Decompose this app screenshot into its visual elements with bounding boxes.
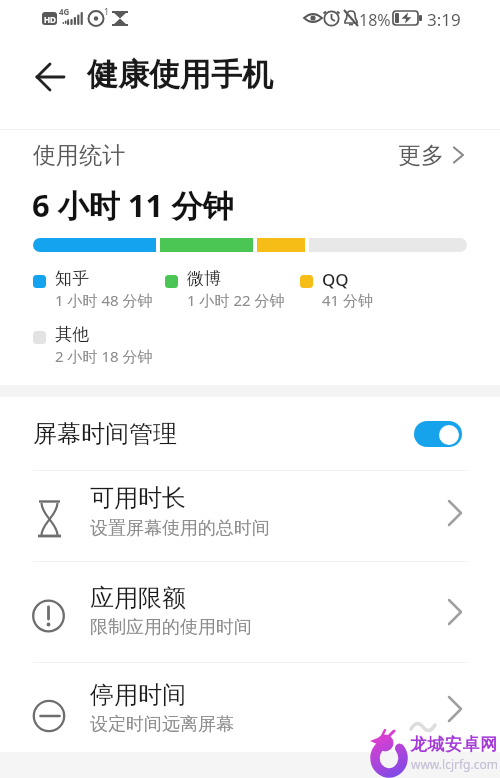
staticText: 限制应用的使用时间	[90, 616, 252, 639]
staticText: 龙城安卓网	[410, 734, 498, 755]
staticText: 应用限额	[90, 583, 186, 613]
staticText: 其他	[55, 324, 89, 345]
staticText: 停用时间	[90, 680, 186, 710]
staticText: 1 小时 22 分钟	[187, 290, 285, 310]
button[interactable]: 停用时间	[0, 662, 500, 758]
staticText: 使用统计	[33, 141, 125, 170]
staticText: 屏幕时间管理	[33, 419, 177, 449]
staticText: 18%	[359, 9, 391, 31]
staticText: 1	[104, 5, 110, 17]
staticText: 2 小时 18 分钟	[55, 346, 153, 366]
staticText: 6 小时 11 分钟	[32, 184, 234, 226]
button[interactable]: 应用限额	[0, 561, 500, 662]
staticText: QQ	[322, 268, 349, 291]
staticText: 可用时长	[90, 483, 186, 513]
staticText: 健康使用手机	[87, 55, 273, 94]
button[interactable]: 使用统计	[0, 138, 500, 172]
staticText: 微博	[187, 268, 221, 289]
staticText: 设置屏幕使用的总时间	[90, 517, 270, 540]
staticText: www.lcjrfg.com	[411, 756, 498, 772]
button[interactable]: 可用时长	[0, 470, 500, 561]
staticText: 41 分钟	[322, 290, 374, 310]
staticText: 3:19	[427, 8, 461, 31]
staticText: 1 小时 48 分钟	[55, 290, 153, 310]
staticText: 4G	[59, 6, 70, 17]
staticText: 设定时间远离屏幕	[90, 713, 234, 736]
staticText: HD	[44, 14, 56, 25]
staticText: 知乎	[55, 268, 89, 289]
button[interactable]	[20, 58, 66, 98]
staticText: 更多	[398, 141, 444, 170]
button[interactable]: 屏幕时间管理	[0, 399, 500, 469]
